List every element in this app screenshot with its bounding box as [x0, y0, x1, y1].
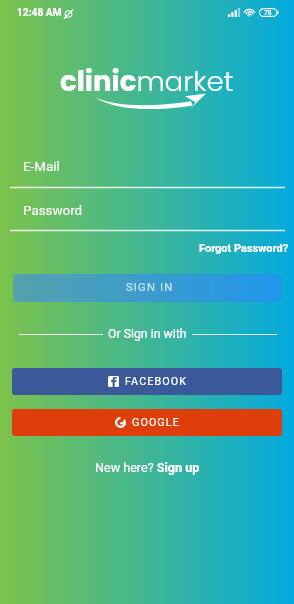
staticText: 78	[264, 9, 272, 17]
staticText: Forgot Password?	[199, 242, 289, 255]
staticText: New here? Sign up	[95, 460, 200, 475]
staticText: Or Sign in with	[108, 327, 187, 341]
button[interactable]: New here? Sign up	[91, 456, 204, 479]
button[interactable]: Facebook	[12, 368, 282, 395]
staticText: E-Mail	[23, 159, 60, 175]
other: Facebook	[108, 376, 119, 387]
button[interactable]: Password	[0, 202, 294, 220]
staticText: SIGN IN	[126, 281, 174, 294]
button[interactable]: SIGN IN	[13, 274, 282, 302]
button[interactable]: E-Mail	[0, 158, 294, 176]
staticText: GOOGLE	[132, 416, 180, 429]
button[interactable]: Forgot Password?	[194, 238, 294, 259]
button[interactable]: Google	[12, 409, 282, 436]
staticText: 12:48 AM	[17, 7, 62, 19]
staticText: clinicmarket	[60, 62, 234, 101]
staticText: FACEBOOK	[125, 375, 187, 388]
staticText: Password	[23, 203, 83, 219]
other: Google	[115, 417, 126, 428]
